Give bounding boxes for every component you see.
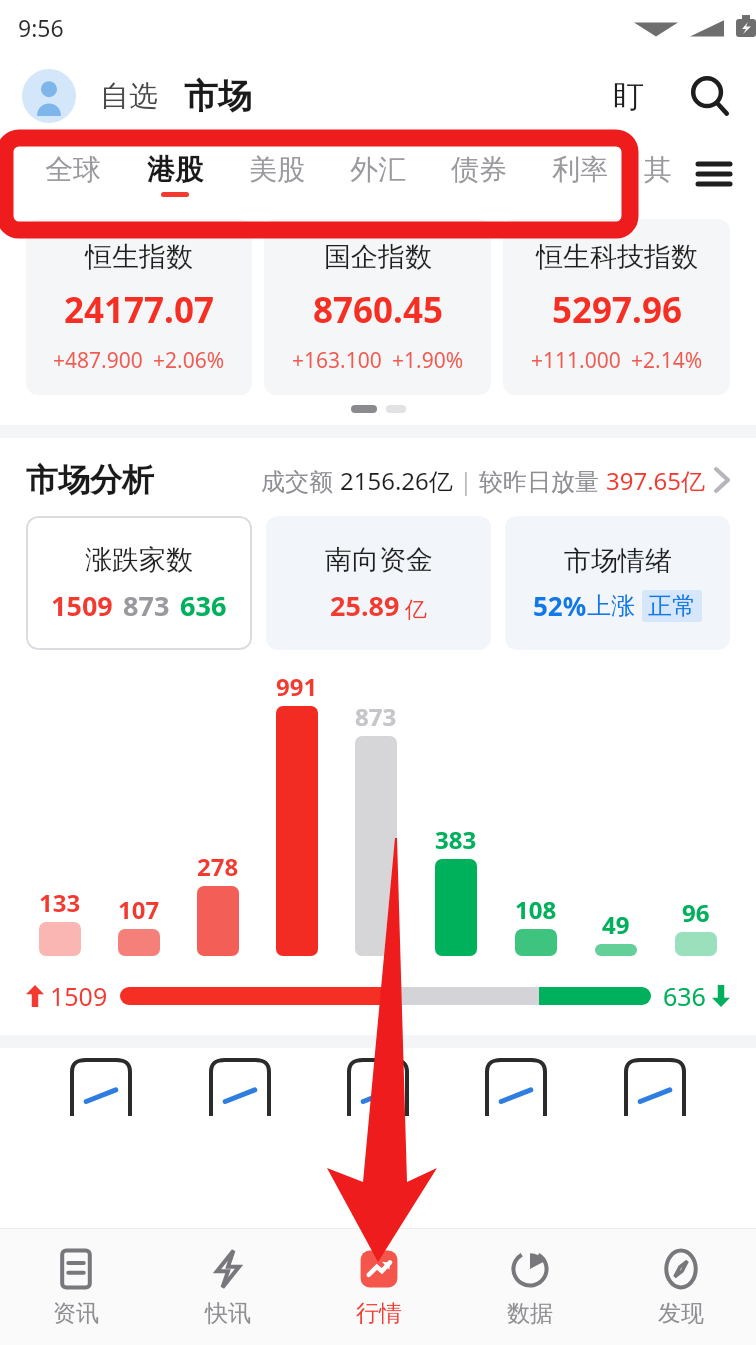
staticText: 49 — [602, 908, 630, 941]
staticText: 52% — [533, 588, 587, 623]
button[interactable]: 行情 — [303, 1229, 454, 1345]
staticText: 债券 — [451, 152, 507, 187]
staticText: 25.89 — [330, 587, 400, 624]
button[interactable]: 恒生科技指数 — [503, 219, 730, 395]
button[interactable]: Profile — [22, 69, 76, 123]
staticText: 国企指数 — [324, 240, 432, 274]
button[interactable]: More tabs — [686, 137, 742, 211]
staticText: 数据 — [507, 1299, 553, 1328]
staticText: 上涨 — [587, 591, 635, 621]
staticText: 南向资金 — [325, 543, 433, 577]
button[interactable]: 市场情绪 — [505, 516, 730, 650]
staticText: 5297.96 — [552, 286, 682, 334]
staticText: 107 — [118, 893, 160, 926]
staticText: +163.100 — [292, 346, 382, 375]
staticText: 盯 — [613, 77, 644, 116]
button[interactable]: 快讯 — [152, 1229, 303, 1345]
staticText: 快讯 — [205, 1299, 251, 1328]
staticText: +2.14% — [631, 346, 703, 375]
button[interactable]: Watchlist — [604, 72, 652, 120]
button[interactable]: 自选 — [100, 78, 158, 115]
button[interactable] — [618, 1058, 692, 1118]
staticText: 133 — [39, 886, 81, 919]
staticText: 8760.45 — [313, 286, 443, 334]
staticText: 2156.26亿 — [340, 464, 453, 497]
button[interactable] — [203, 1058, 277, 1118]
button[interactable]: 港股 — [124, 137, 226, 211]
staticText: | — [453, 464, 479, 497]
staticText: 外汇 — [350, 152, 406, 187]
staticText: 涨跌家数 — [85, 543, 193, 577]
button[interactable]: 数据 — [454, 1229, 605, 1345]
staticText: 美股 — [249, 152, 305, 187]
button[interactable]: 美股 — [226, 137, 327, 211]
button[interactable]: 恒生指数 — [26, 219, 252, 395]
staticText: 资讯 — [53, 1299, 99, 1328]
button[interactable]: 全球 — [22, 137, 124, 211]
staticText: 9:56 — [18, 12, 64, 43]
button[interactable]: 外汇 — [327, 137, 428, 211]
staticText: +487.900 — [53, 346, 143, 375]
staticText: 市场分析 — [26, 460, 154, 500]
staticText: +111.000 — [531, 346, 621, 375]
staticText: 其 — [644, 152, 672, 187]
button[interactable]: 南向资金 — [266, 516, 491, 650]
staticText: 恒生指数 — [85, 240, 193, 274]
staticText: 成交额 — [261, 464, 340, 497]
staticText: 24177.07 — [64, 286, 214, 334]
button[interactable]: 涨跌家数 — [26, 516, 252, 650]
staticText: 行情 — [356, 1299, 402, 1328]
staticText: 1509 — [50, 979, 108, 1013]
staticText: 397.65亿 — [606, 464, 706, 497]
button[interactable]: 利率 — [529, 137, 630, 211]
staticText: 市场情绪 — [564, 544, 672, 578]
staticText: 1509 — [51, 587, 113, 624]
staticText: +1.90% — [392, 346, 464, 375]
staticText: 96 — [682, 896, 710, 929]
staticText: 636 — [180, 587, 227, 624]
button[interactable]: 国企指数 — [264, 219, 491, 395]
staticText: 873 — [123, 587, 170, 624]
button[interactable]: 其 — [630, 137, 686, 211]
staticText: 全球 — [45, 152, 101, 187]
staticText: +2.06% — [153, 346, 225, 375]
staticText: 平 — [365, 964, 388, 965]
staticText: 港股 — [147, 152, 203, 187]
staticText: 873 — [355, 700, 397, 733]
button[interactable]: Search — [686, 72, 734, 120]
button[interactable]: 资讯 — [0, 1229, 152, 1345]
button[interactable]: 发现 — [605, 1229, 756, 1345]
button[interactable]: 市场分析 — [0, 460, 756, 500]
button[interactable] — [64, 1058, 138, 1118]
staticText: 亿 — [405, 596, 427, 624]
staticText: 991 — [276, 670, 318, 703]
staticText: 利率 — [552, 152, 608, 187]
staticText: 发现 — [658, 1299, 704, 1328]
staticText: 278 — [197, 850, 239, 883]
staticText: 较昨日放量 — [479, 464, 606, 497]
staticText: 636 — [663, 979, 706, 1013]
button[interactable]: 债券 — [428, 137, 529, 211]
staticText: 108 — [515, 893, 557, 926]
staticText: 383 — [435, 823, 477, 856]
button[interactable] — [479, 1058, 553, 1118]
staticText: 恒生科技指数 — [536, 240, 698, 274]
staticText: 正常 — [648, 591, 696, 621]
button[interactable] — [341, 1058, 415, 1118]
button[interactable]: 市场 — [184, 75, 252, 118]
